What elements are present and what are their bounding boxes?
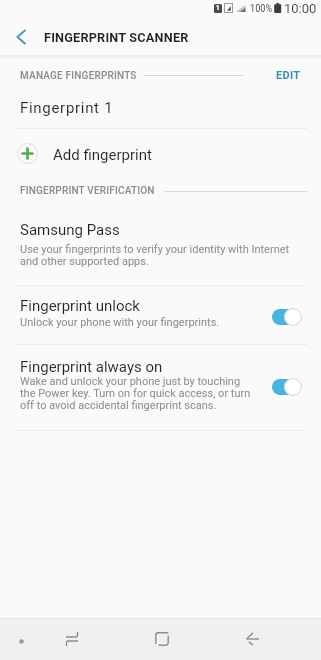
staticText: off to avoid accidental fingerprint scan… bbox=[20, 399, 217, 412]
staticText: Unlock your phone with your fingerprints… bbox=[20, 316, 220, 329]
button[interactable]: Fingerprint 1 bbox=[0, 93, 321, 128]
staticText: 10:00 bbox=[284, 1, 317, 16]
staticText: Fingerprint always on bbox=[20, 358, 163, 376]
staticText: 1 bbox=[216, 4, 220, 12]
staticText: Fingerprint 1 bbox=[20, 99, 114, 117]
button[interactable] bbox=[232, 618, 272, 660]
button[interactable] bbox=[52, 618, 92, 660]
staticText: Samsung Pass bbox=[20, 221, 120, 239]
button[interactable]: Fingerprint unlock bbox=[0, 286, 321, 344]
staticText: Add fingerprint bbox=[53, 146, 152, 164]
staticText: Wake and unlock your phone just by touch… bbox=[20, 375, 241, 388]
button[interactable] bbox=[142, 618, 182, 660]
staticText: MANAGE FINGERPRINTS bbox=[20, 70, 137, 82]
button[interactable] bbox=[8, 26, 34, 48]
staticText: FINGERPRINT VERIFICATION bbox=[20, 185, 155, 197]
button[interactable] bbox=[272, 378, 302, 396]
button[interactable]: Samsung Pass bbox=[0, 196, 321, 285]
button[interactable]: Fingerprint always on bbox=[0, 345, 321, 430]
staticText: EDIT bbox=[276, 69, 301, 82]
button[interactable]: Add fingerprint bbox=[0, 129, 321, 180]
staticText: FINGERPRINT SCANNER bbox=[44, 30, 189, 45]
staticText: 100% bbox=[250, 2, 273, 14]
button[interactable] bbox=[272, 308, 302, 326]
staticText: Fingerprint unlock bbox=[20, 297, 140, 315]
staticText: the Power key. Turn on for quick access,… bbox=[20, 387, 251, 400]
button[interactable]: EDIT bbox=[272, 64, 297, 77]
staticText: and other supported apps. bbox=[20, 255, 149, 268]
staticText: Use your fingerprints to verify your ide… bbox=[20, 243, 290, 256]
